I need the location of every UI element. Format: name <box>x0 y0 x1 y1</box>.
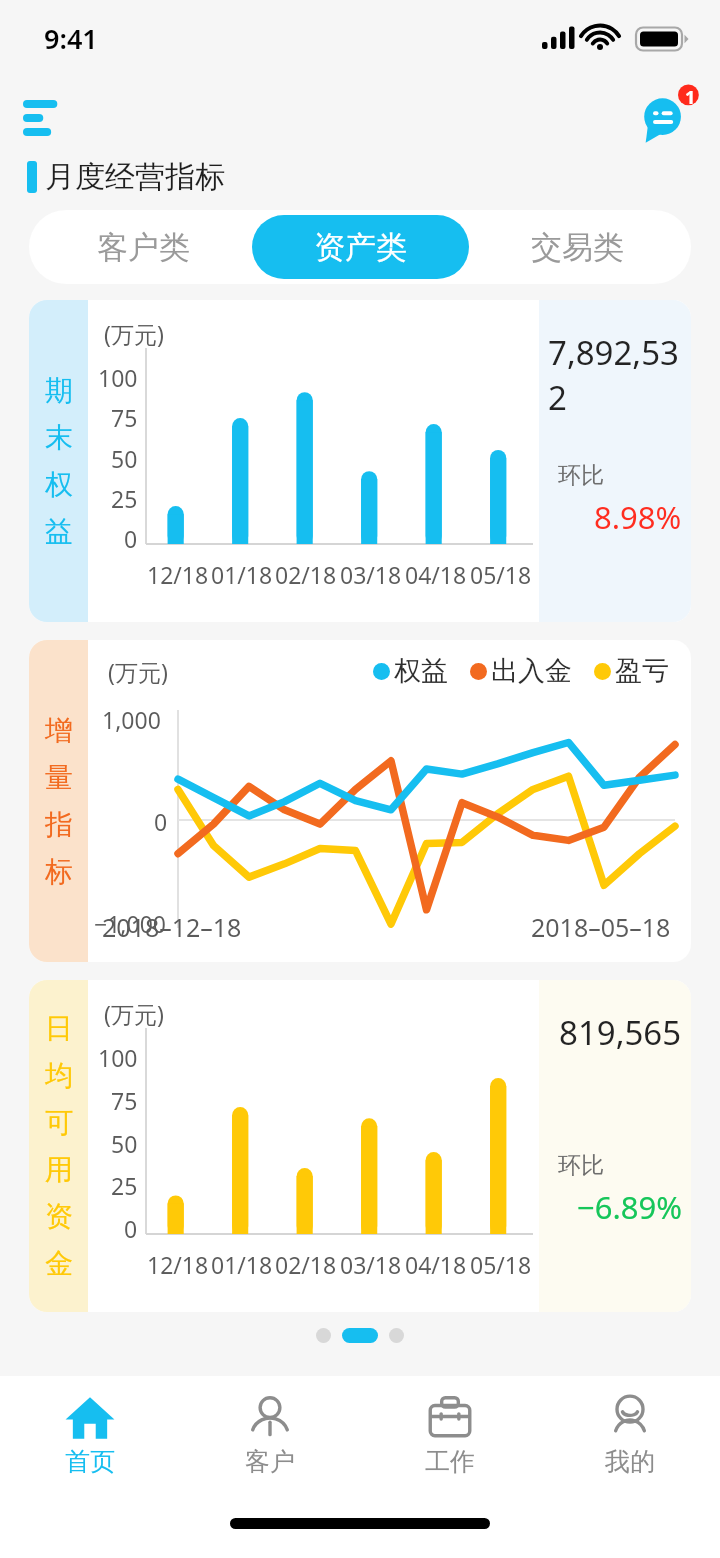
staticText: 月度经营指标 <box>45 158 225 196</box>
button[interactable]: Messages <box>632 82 704 154</box>
staticText: 权益 <box>394 654 448 688</box>
staticText: 盈亏 <box>615 654 669 688</box>
staticText: 02/18 <box>275 559 337 590</box>
staticText: 标 <box>45 854 73 889</box>
staticText: 50 <box>111 1128 138 1159</box>
staticText: 75 <box>111 1085 138 1116</box>
staticText: 03/18 <box>340 1249 402 1280</box>
staticText: 04/18 <box>405 559 467 590</box>
staticText: 用 <box>45 1152 73 1187</box>
button[interactable]: 期 <box>29 300 691 622</box>
button[interactable]: 交易类 <box>469 215 686 279</box>
staticText: 50 <box>111 443 138 474</box>
staticText: 益 <box>45 514 73 549</box>
staticText: 末 <box>45 420 73 455</box>
staticText: 增 <box>45 713 73 748</box>
staticText: 100 <box>98 1042 138 1073</box>
staticText: 权 <box>45 467 73 502</box>
staticText: −1,000 <box>94 908 166 939</box>
staticText: 期 <box>45 373 73 408</box>
staticText: 05/18 <box>470 1249 532 1280</box>
staticText: 日 <box>45 1011 73 1046</box>
staticText: 01/18 <box>211 559 273 590</box>
staticText: 9:41 <box>44 20 98 57</box>
staticText: 05/18 <box>470 559 532 590</box>
button[interactable]: 日 <box>29 980 691 1312</box>
button[interactable]: 资产类 <box>252 215 469 279</box>
staticText: 12/18 <box>147 559 209 590</box>
staticText: 1 <box>685 85 696 110</box>
staticText: 12/18 <box>147 1249 209 1280</box>
staticText: (万元) <box>108 656 168 687</box>
button[interactable]: 增 <box>29 640 691 962</box>
staticText: (万元) <box>104 998 164 1029</box>
staticText: 0 <box>154 806 168 837</box>
staticText: 首页 <box>65 1446 115 1477</box>
staticText: 客户 <box>245 1446 295 1477</box>
staticText: 环比 <box>558 461 604 490</box>
staticText: 指 <box>45 807 73 842</box>
staticText: 2018–05–18 <box>531 910 671 944</box>
button[interactable]: Menu <box>14 87 76 149</box>
staticText: 0 <box>124 1213 138 1244</box>
staticText: 工作 <box>425 1446 475 1477</box>
staticText: 交易类 <box>531 228 624 267</box>
staticText: (万元) <box>104 318 164 349</box>
button[interactable]: 客户类 <box>34 215 252 279</box>
button[interactable]: 首页 <box>0 1376 180 1508</box>
staticText: 2018–12–18 <box>102 910 242 944</box>
staticText: 均 <box>45 1058 73 1093</box>
staticText: 01/18 <box>211 1249 273 1280</box>
staticText: 1,000 <box>102 704 161 735</box>
staticText: 环比 <box>558 1151 604 1180</box>
staticText: 25 <box>111 1170 138 1201</box>
staticText: 出入金 <box>491 654 572 688</box>
staticText: 资 <box>45 1199 73 1234</box>
staticText: 7,892,532 <box>548 330 682 420</box>
staticText: 02/18 <box>275 1249 337 1280</box>
staticText: 100 <box>98 362 138 393</box>
staticText: 03/18 <box>340 559 402 590</box>
button[interactable]: 我的 <box>540 1376 720 1508</box>
staticText: 客户类 <box>97 228 190 267</box>
button[interactable]: 客户 <box>180 1376 360 1508</box>
staticText: 资产类 <box>314 228 407 267</box>
staticText: 04/18 <box>405 1249 467 1280</box>
button[interactable]: 工作 <box>360 1376 540 1508</box>
staticText: 量 <box>45 760 73 795</box>
staticText: 我的 <box>605 1446 655 1477</box>
staticText: 75 <box>111 402 138 433</box>
staticText: 8.98% <box>594 496 682 538</box>
staticText: 可 <box>45 1105 73 1140</box>
staticText: 0 <box>124 523 138 554</box>
staticText: 25 <box>111 483 138 514</box>
staticText: 819,565 <box>559 1010 682 1055</box>
staticText: 金 <box>45 1246 73 1281</box>
staticText: −6.89% <box>577 1186 682 1228</box>
